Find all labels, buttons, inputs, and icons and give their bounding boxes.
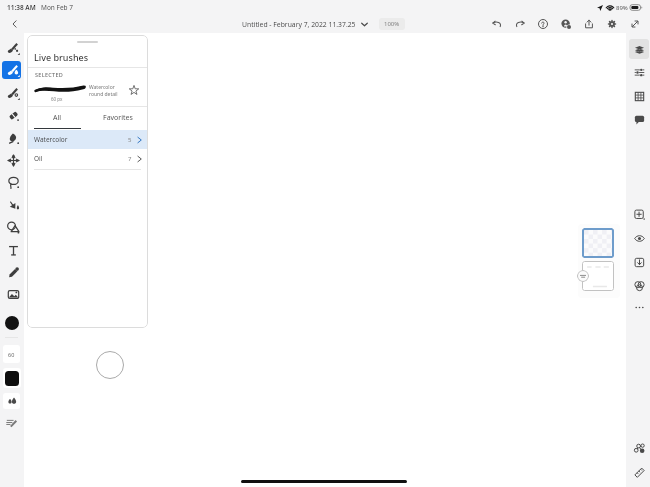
staticText: 89% xyxy=(616,4,628,12)
button[interactable]: Untitled - February 7, 2022 11.37.25 xyxy=(239,19,371,30)
button[interactable]: Layer 1 xyxy=(582,228,614,258)
button[interactable]: Lasso select xyxy=(3,172,23,192)
button[interactable]: Share xyxy=(577,16,600,32)
button[interactable]: Layer options xyxy=(577,270,589,282)
button[interactable]: Smudge xyxy=(3,128,23,148)
staticText: 60 xyxy=(8,351,15,358)
button[interactable]: Back xyxy=(6,16,22,32)
staticText: Untitled - February 7, 2022 11.37.25 xyxy=(242,20,356,29)
button[interactable]: Grid xyxy=(629,86,649,106)
staticText: Oil xyxy=(34,154,43,163)
button[interactable]: Edit xyxy=(629,462,649,482)
button[interactable]: Watercolor xyxy=(27,130,148,149)
button[interactable]: Flow xyxy=(3,393,20,409)
button[interactable]: Comments xyxy=(629,109,649,129)
button[interactable]: Foreground colour xyxy=(5,371,19,386)
button[interactable]: 100% xyxy=(379,18,405,30)
button[interactable]: Blend mode xyxy=(629,275,649,295)
staticText: All xyxy=(53,113,62,123)
staticText: Live brushes xyxy=(34,51,89,63)
button[interactable]: Show or hide xyxy=(629,228,649,248)
button[interactable]: Full screen xyxy=(623,16,646,32)
button[interactable]: Redo xyxy=(508,16,531,32)
button[interactable]: Eyedropper xyxy=(3,262,23,282)
button[interactable]: Adjustments xyxy=(629,62,649,82)
staticText: Watercolor xyxy=(34,135,68,144)
staticText: Watercolor round detail xyxy=(89,84,118,98)
button[interactable]: Help xyxy=(531,16,554,32)
button[interactable]: Eraser xyxy=(3,105,23,125)
button[interactable]: Layers xyxy=(629,39,649,59)
staticText: 5 xyxy=(128,136,132,144)
staticText: 11:38 AM xyxy=(7,3,36,12)
button[interactable]: Color xyxy=(5,316,19,330)
button[interactable]: Effects xyxy=(629,438,649,458)
staticText: Favorites xyxy=(103,113,133,123)
button[interactable]: Favorites xyxy=(87,107,148,128)
button[interactable]: Settings xyxy=(600,16,623,32)
button[interactable]: Layer 2 xyxy=(582,261,614,291)
staticText: 100% xyxy=(384,20,400,28)
button[interactable]: Vector brush xyxy=(3,83,23,103)
staticText: SELECTED xyxy=(35,71,64,78)
button[interactable]: Add layer xyxy=(629,204,649,224)
button[interactable]: Add to favorites xyxy=(126,82,141,97)
button[interactable]: Undo xyxy=(485,16,508,32)
button[interactable]: Live brush xyxy=(3,60,23,80)
button[interactable]: Account xyxy=(554,16,577,32)
button[interactable]: Fill xyxy=(3,195,23,215)
button[interactable]: Place image xyxy=(3,284,23,304)
button[interactable]: Oil xyxy=(27,149,148,168)
button[interactable]: Brush size xyxy=(3,345,20,363)
staticText: 7 xyxy=(128,155,132,163)
button[interactable]: Merge down xyxy=(629,252,649,272)
button[interactable]: Text xyxy=(3,240,23,260)
staticText: 60 px xyxy=(51,96,63,102)
staticText: Mon Feb 7 xyxy=(41,3,73,12)
button[interactable]: All xyxy=(27,107,87,128)
button[interactable]: Transform xyxy=(3,150,23,170)
button[interactable]: Shape xyxy=(3,217,23,237)
button[interactable]: More xyxy=(629,297,649,317)
button[interactable]: Brush settings xyxy=(3,414,20,431)
button[interactable]: Pixel brush xyxy=(3,38,23,58)
